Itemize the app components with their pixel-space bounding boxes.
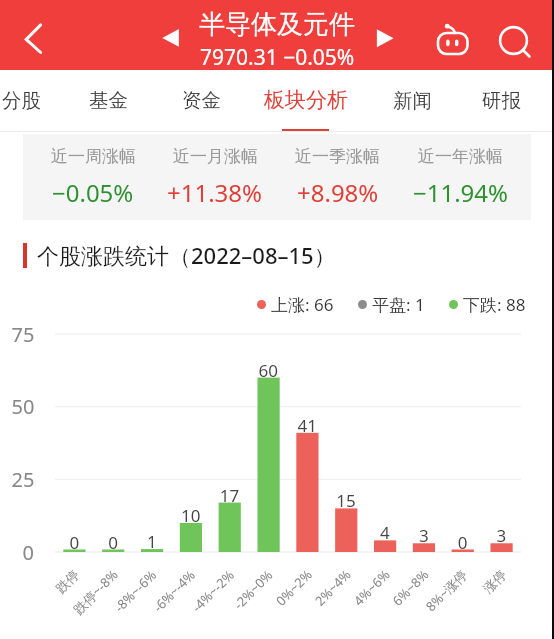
staticText: +11.38%	[167, 176, 263, 209]
staticText: 平盘: 1	[372, 293, 425, 316]
staticText: 近一季涨幅	[295, 146, 380, 167]
button[interactable]: 新闻	[379, 70, 445, 131]
staticText: 基金	[89, 88, 128, 113]
button[interactable]: 下跌: 88	[449, 293, 526, 316]
staticText: 近一年涨幅	[418, 146, 503, 167]
staticText: 半导体及元件	[199, 8, 355, 41]
button[interactable]: 资金	[168, 70, 234, 131]
button[interactable]: 平盘: 1	[358, 293, 425, 316]
staticText: 7970.31 −0.05%	[200, 43, 355, 72]
button[interactable]: Back	[4, 11, 52, 59]
staticText: 近一周涨幅	[51, 146, 136, 167]
staticText: +8.98%	[297, 176, 379, 209]
staticText: 研报	[482, 88, 521, 113]
staticText: 板块分析	[264, 87, 348, 113]
staticText: 个股涨跌统计（2022–08–15）	[37, 240, 336, 270]
button[interactable]: 上涨: 66	[257, 293, 334, 316]
staticText: 下跌: 88	[463, 293, 526, 316]
staticText: 新闻	[393, 88, 432, 113]
button[interactable]: Search	[487, 13, 533, 59]
staticText: 资金	[182, 88, 221, 113]
button[interactable]: 分股	[0, 70, 54, 131]
button[interactable]: Next sector	[368, 20, 408, 60]
staticText: 上涨: 66	[271, 293, 334, 316]
staticText: 近一月涨幅	[173, 146, 258, 167]
button[interactable]: Previous sector	[150, 20, 190, 60]
staticText: −0.05%	[52, 176, 134, 209]
button[interactable]: 研报	[468, 70, 534, 131]
button[interactable]: 板块分析	[251, 70, 360, 131]
staticText: 分股	[2, 88, 41, 113]
button[interactable]: AI assistant	[429, 13, 475, 59]
staticText: −11.94%	[413, 176, 509, 209]
button[interactable]: 基金	[75, 70, 141, 131]
